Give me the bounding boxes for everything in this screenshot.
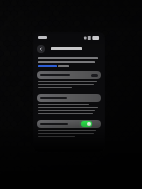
button[interactable]: Toggle setting xyxy=(81,121,92,127)
button[interactable]: Back xyxy=(37,45,45,53)
button[interactable] xyxy=(37,71,101,79)
button[interactable] xyxy=(37,94,101,102)
button[interactable]: Toggle setting xyxy=(37,120,101,128)
